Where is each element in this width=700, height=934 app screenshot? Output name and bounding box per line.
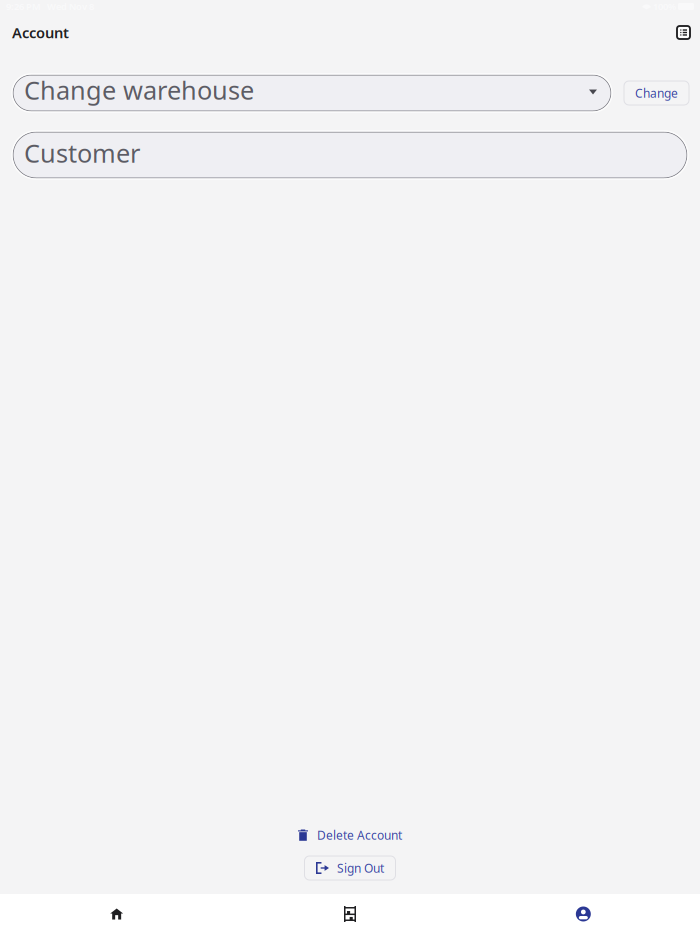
button[interactable]: Delete Account — [292, 823, 408, 847]
button[interactable]: Inventory — [233, 894, 467, 934]
button[interactable]: Change warehouse — [12, 74, 612, 112]
button[interactable]: Home — [0, 894, 233, 934]
button[interactable]: Change — [624, 81, 689, 105]
button[interactable]: Sign Out — [304, 856, 395, 880]
staticText: Change — [635, 85, 678, 101]
staticText: Sign Out — [337, 860, 384, 876]
staticText: Account — [12, 23, 69, 42]
button[interactable]: Account — [467, 894, 700, 934]
staticText: Change warehouse — [24, 73, 254, 107]
staticText: Delete Account — [317, 827, 402, 843]
staticText: Customer — [24, 136, 140, 170]
button[interactable]: Customer — [12, 131, 688, 179]
button[interactable]: Orders — [673, 20, 694, 45]
